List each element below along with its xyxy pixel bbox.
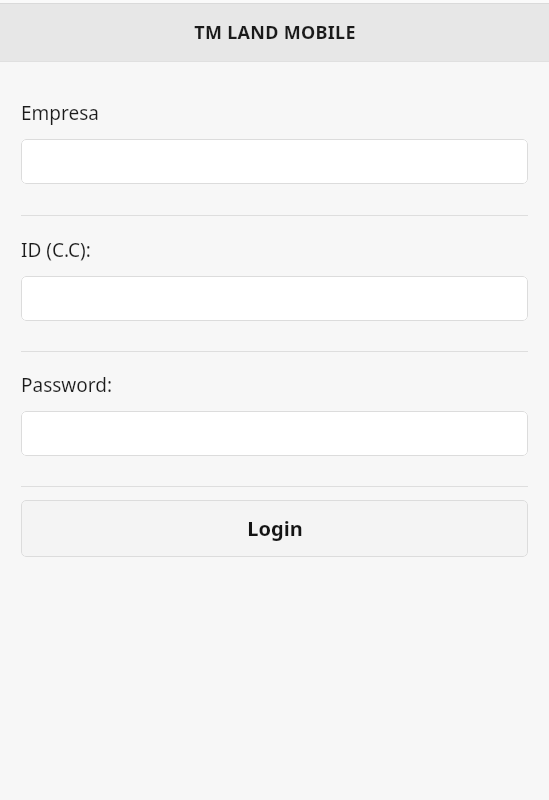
staticText: ID (C.C): [21,237,91,263]
button[interactable] [21,276,528,321]
staticText: Login [247,515,303,542]
staticText: Empresa [21,100,99,126]
button[interactable]: Login [21,500,528,557]
staticText: TM LAND MOBILE [194,20,356,45]
staticText: Password: [21,372,113,398]
button[interactable] [21,411,528,456]
button[interactable] [21,139,528,184]
